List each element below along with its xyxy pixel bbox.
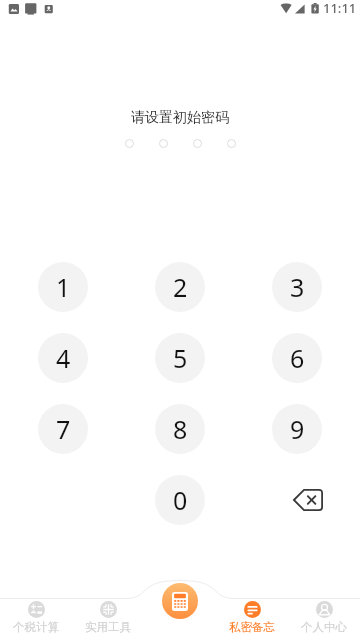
button[interactable]: 3	[272, 262, 322, 312]
staticText: 个人中心	[301, 620, 347, 634]
button[interactable]: 个人中心	[288, 598, 360, 640]
staticText: 8	[173, 412, 188, 446]
staticText: 2	[173, 270, 188, 304]
button[interactable]: 1	[38, 262, 88, 312]
button[interactable]: 0	[155, 475, 205, 525]
button[interactable]: 6	[272, 333, 322, 383]
staticText: 私密备忘	[229, 620, 275, 634]
button[interactable]: 2	[155, 262, 205, 312]
button[interactable]: 9	[272, 404, 322, 454]
staticText: 个税计算	[13, 620, 59, 634]
button[interactable]: 个税计算	[0, 598, 72, 640]
button[interactable]: 5	[155, 333, 205, 383]
staticText: 4	[56, 341, 71, 375]
staticText: 请设置初始密码	[0, 109, 360, 127]
button[interactable]: 8	[155, 404, 205, 454]
staticText: 9	[290, 412, 305, 446]
staticText: 5	[173, 341, 188, 375]
button[interactable]: 实用工具	[72, 598, 144, 640]
staticText: 6	[290, 341, 305, 375]
staticText: 1	[56, 270, 71, 304]
staticText: 实用工具	[85, 620, 131, 634]
staticText: 3	[290, 270, 305, 304]
button[interactable]: 4	[38, 333, 88, 383]
staticText: 7	[56, 412, 71, 446]
button[interactable]: Delete	[272, 475, 322, 525]
button[interactable]: 私密备忘	[216, 598, 288, 640]
button[interactable]: 7	[38, 404, 88, 454]
staticText: 0	[173, 483, 188, 517]
staticText: 11:11	[323, 0, 357, 17]
button[interactable]: Calculator	[162, 583, 198, 619]
